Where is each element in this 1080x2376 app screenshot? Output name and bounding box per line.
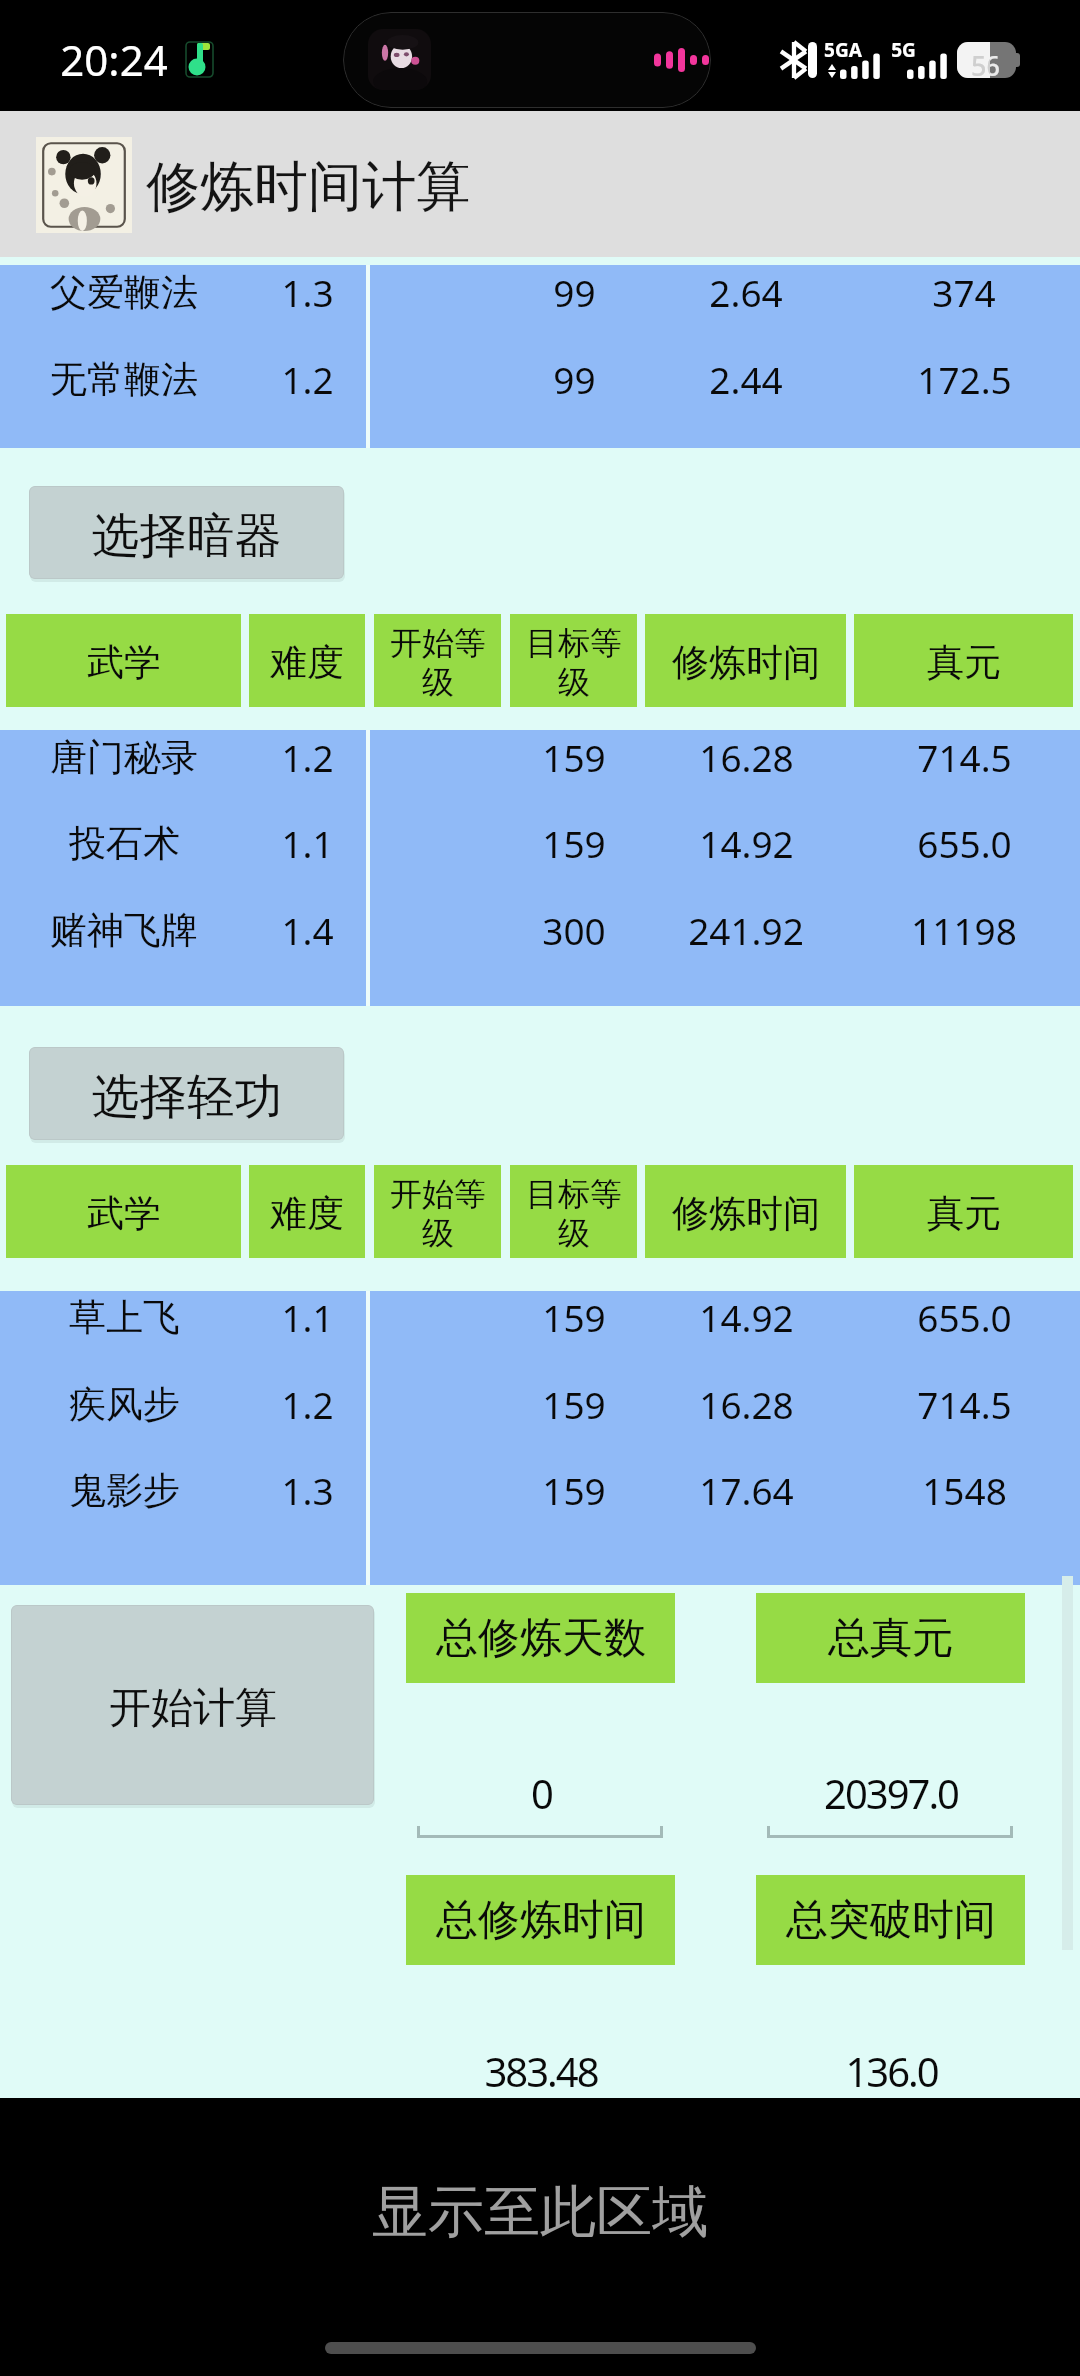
button[interactable]: 目标等 级 — [510, 1165, 637, 1258]
staticText: 1.2 — [281, 732, 334, 782]
button[interactable]: 难度 — [249, 614, 365, 707]
staticText: 草上飞 — [69, 1294, 180, 1341]
staticText: 父爱鞭法 — [50, 269, 198, 316]
staticText: 714.5 — [917, 1379, 1012, 1429]
staticText: 开始计算 — [109, 1682, 277, 1735]
staticText: 99 — [553, 354, 596, 404]
button[interactable]: 总修炼天数 — [406, 1593, 675, 1683]
staticText: 14.92 — [699, 1292, 794, 1342]
staticText: 1548 — [922, 1465, 1007, 1515]
button[interactable]: 选择暗器 — [29, 486, 344, 579]
staticText: 目标等 级 — [526, 623, 622, 703]
staticText: 总真元 — [828, 1612, 954, 1665]
staticText: 159 — [542, 818, 606, 868]
staticText: 20397.0 — [824, 1766, 958, 1820]
staticText: 99 — [553, 267, 596, 317]
staticText: 56 — [990, 47, 1000, 78]
staticText: 无常鞭法 — [50, 356, 198, 403]
staticText: 选择轻功 — [92, 1067, 282, 1127]
staticText: 714.5 — [917, 732, 1012, 782]
staticText: 5GA — [824, 37, 862, 63]
staticText: 1.2 — [281, 1379, 334, 1429]
button[interactable]: 修炼时间 — [645, 1165, 846, 1258]
staticText: 1.1 — [281, 1292, 334, 1342]
button[interactable]: 武学 — [6, 1165, 241, 1258]
button[interactable]: 开始等 级 — [374, 614, 501, 707]
staticText: 疾风步 — [69, 1381, 180, 1428]
staticText: 显示至此区域 — [372, 2177, 708, 2248]
staticText: 修炼时间计算 — [146, 153, 470, 221]
staticText: 2.44 — [709, 354, 783, 404]
staticText: 56 — [971, 47, 990, 78]
staticText: 赌神飞牌 — [50, 907, 198, 954]
staticText: 武学 — [87, 639, 161, 686]
staticText: 1.4 — [281, 905, 334, 955]
staticText: 0 — [531, 1766, 552, 1820]
staticText: 14.92 — [699, 818, 794, 868]
button[interactable]: 总突破时间 — [756, 1875, 1025, 1965]
staticText: 159 — [542, 1292, 606, 1342]
staticText: 16.28 — [699, 732, 794, 782]
button[interactable]: 总真元 — [756, 1593, 1025, 1683]
button[interactable]: 开始计算 — [11, 1605, 374, 1805]
button[interactable]: 真元 — [854, 614, 1073, 707]
button[interactable]: 武学 — [6, 614, 241, 707]
staticText: 鬼影步 — [69, 1467, 180, 1514]
staticText: 难度 — [270, 639, 344, 686]
staticText: 总修炼天数 — [436, 1612, 646, 1665]
staticText: 655.0 — [917, 818, 1012, 868]
staticText: 武学 — [87, 1190, 161, 1237]
button[interactable]: 选择轻功 — [29, 1047, 344, 1140]
staticText: 修炼时间 — [672, 1190, 820, 1237]
staticText: 目标等 级 — [526, 1174, 622, 1254]
staticText: 17.64 — [699, 1465, 794, 1515]
staticText: 16.28 — [699, 1379, 794, 1429]
staticText: 投石术 — [69, 820, 180, 867]
staticText: 11198 — [911, 905, 1017, 955]
staticText: 159 — [542, 732, 606, 782]
staticText: 159 — [542, 1379, 606, 1429]
other: App icon — [36, 137, 132, 233]
staticText: 总突破时间 — [786, 1894, 996, 1947]
staticText: 159 — [542, 1465, 606, 1515]
staticText: 136.0 — [845, 2044, 938, 2098]
staticText: 300 — [542, 905, 606, 955]
staticText: 难度 — [270, 1190, 344, 1237]
staticText: 383.48 — [484, 2044, 598, 2098]
staticText: 1.1 — [281, 818, 334, 868]
staticText: 20:24 — [60, 31, 168, 88]
button[interactable]: 总修炼时间 — [406, 1875, 675, 1965]
staticText: 修炼时间 — [672, 639, 820, 686]
staticText: 开始等 级 — [390, 623, 486, 703]
staticText: 开始等 级 — [390, 1174, 486, 1254]
button[interactable]: 目标等 级 — [510, 614, 637, 707]
staticText: 374 — [932, 267, 996, 317]
staticText: 1.3 — [281, 267, 334, 317]
staticText: 172.5 — [917, 354, 1012, 404]
staticText: 1.2 — [281, 354, 334, 404]
button[interactable]: 修炼时间 — [645, 614, 846, 707]
staticText: 真元 — [927, 1190, 1001, 1237]
staticText: 2.64 — [709, 267, 783, 317]
button[interactable]: 真元 — [854, 1165, 1073, 1258]
staticText: 选择暗器 — [92, 506, 282, 566]
staticText: 655.0 — [917, 1292, 1012, 1342]
staticText: 唐门秘录 — [50, 734, 198, 781]
button[interactable]: 难度 — [249, 1165, 365, 1258]
staticText: 真元 — [927, 639, 1001, 686]
button[interactable]: 开始等 级 — [374, 1165, 501, 1258]
staticText: 5G — [891, 37, 916, 63]
staticText: 241.92 — [688, 905, 804, 955]
staticText: 总修炼时间 — [436, 1894, 646, 1947]
staticText: 1.3 — [281, 1465, 334, 1515]
